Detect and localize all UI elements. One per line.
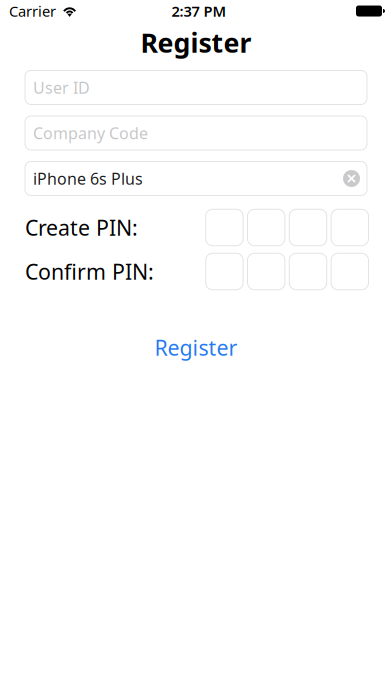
button[interactable]: PIN digit	[206, 209, 243, 246]
button[interactable]: Company Code	[25, 116, 367, 150]
button[interactable]: PIN digit	[247, 253, 285, 290]
button[interactable]: PIN digit	[331, 209, 368, 246]
button[interactable]: PIN digit	[247, 209, 285, 246]
button[interactable]: User ID	[25, 70, 367, 104]
staticText: Carrier	[9, 1, 56, 21]
button[interactable]: PIN digit	[206, 253, 243, 290]
staticText: 2:37 PM	[171, 1, 226, 21]
button[interactable]: PIN digit	[331, 253, 368, 290]
staticText: User ID	[33, 77, 90, 98]
staticText: iPhone 6s Plus	[33, 168, 143, 189]
staticText: Create PIN:	[25, 213, 138, 242]
button[interactable]: PIN digit	[289, 209, 327, 246]
staticText: Register	[154, 333, 237, 362]
button[interactable]: Register	[0, 332, 392, 362]
staticText: Confirm PIN:	[25, 257, 154, 286]
button[interactable]: iPhone 6s Plus	[25, 161, 367, 195]
staticText: Register	[140, 25, 251, 60]
button[interactable]: PIN digit	[289, 253, 327, 290]
staticText: Company Code	[33, 122, 148, 144]
